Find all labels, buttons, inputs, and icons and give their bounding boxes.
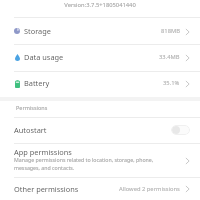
staticText: 35.1% [163, 79, 180, 87]
staticText: Storage [24, 26, 51, 36]
other: Autostart toggle [171, 125, 190, 135]
staticText: Battery [24, 78, 50, 88]
staticText: Data usage [24, 52, 64, 62]
staticText: Permissions [16, 104, 48, 111]
staticText: Allowed 2 permissions [119, 185, 180, 193]
button[interactable]: App permissions [0, 143, 200, 177]
staticText: App permissions [14, 147, 72, 157]
button[interactable]: Battery [0, 70, 200, 96]
button[interactable]: Storage [0, 18, 200, 44]
staticText: 818MB [161, 27, 180, 35]
staticText: Autostart [14, 125, 47, 135]
staticText: Manage permissions related to location, … [14, 156, 180, 171]
button[interactable]: Data usage [0, 44, 200, 70]
staticText: Version:3.7.5+1805041440 [0, 1, 200, 9]
staticText: Other permissions [14, 184, 79, 194]
button[interactable]: Other permissions [0, 177, 200, 200]
staticText: 33.4MB [159, 53, 180, 61]
button[interactable]: Autostart [0, 117, 200, 143]
